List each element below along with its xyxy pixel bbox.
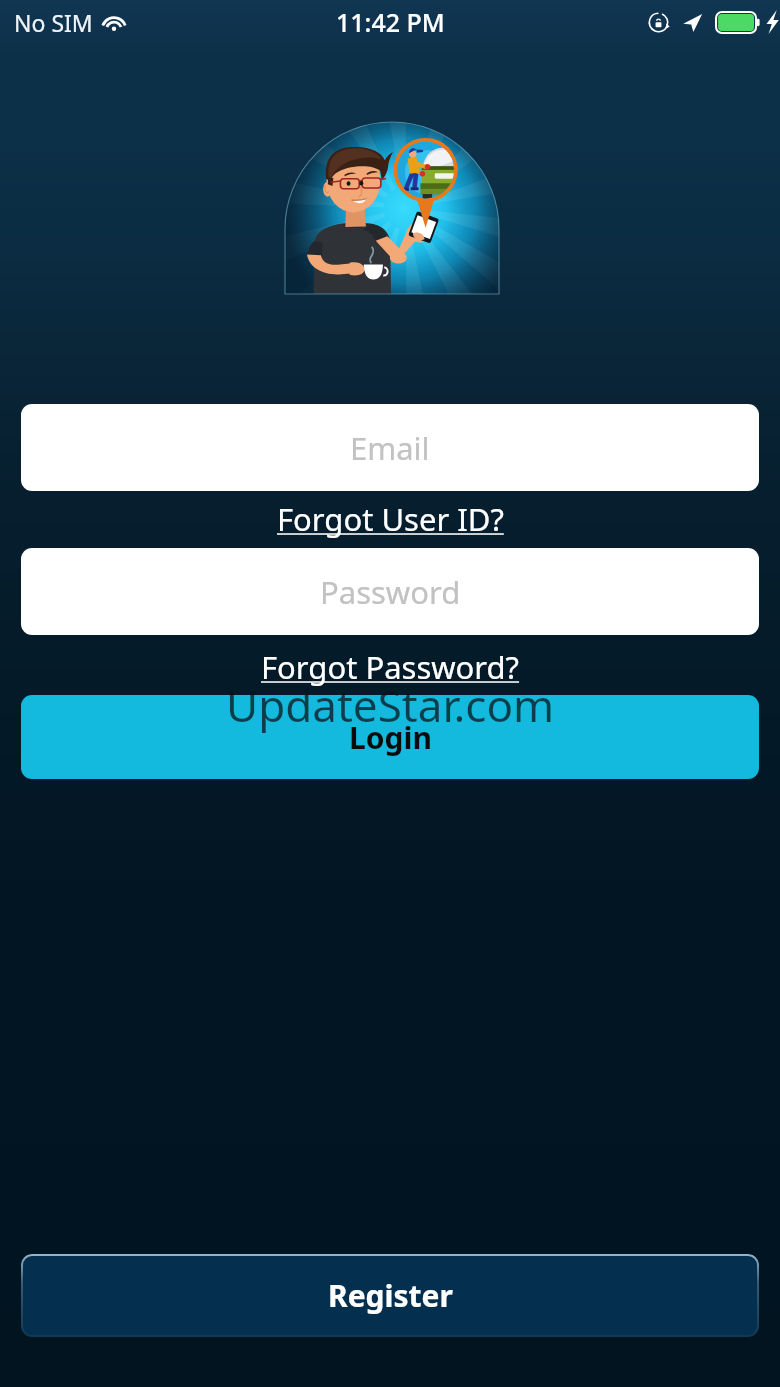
other: Battery full — [715, 11, 764, 34]
staticText: No SIM — [14, 7, 93, 38]
staticText: Login — [349, 717, 432, 758]
other: Wi-Fi connected — [101, 12, 127, 32]
button[interactable]: Forgot User ID? — [271, 496, 510, 542]
staticText: Email — [350, 427, 430, 469]
staticText: UpdateStar.com — [226, 675, 555, 735]
button[interactable]: Password — [21, 548, 759, 635]
button[interactable]: Login — [21, 695, 759, 779]
staticText: Register — [328, 1275, 453, 1316]
other: Location services active — [682, 12, 703, 33]
other: Charging — [765, 10, 780, 34]
button[interactable]: Email — [21, 404, 759, 491]
staticText: Forgot User ID? — [277, 498, 504, 540]
staticText: Forgot Password? — [261, 646, 520, 688]
staticText: 11:42 PM — [336, 5, 445, 39]
button[interactable]: Forgot Password? — [255, 644, 526, 690]
staticText: Password — [320, 571, 461, 613]
button[interactable]: Register — [21, 1254, 759, 1337]
other: Rotation lock — [648, 12, 669, 33]
